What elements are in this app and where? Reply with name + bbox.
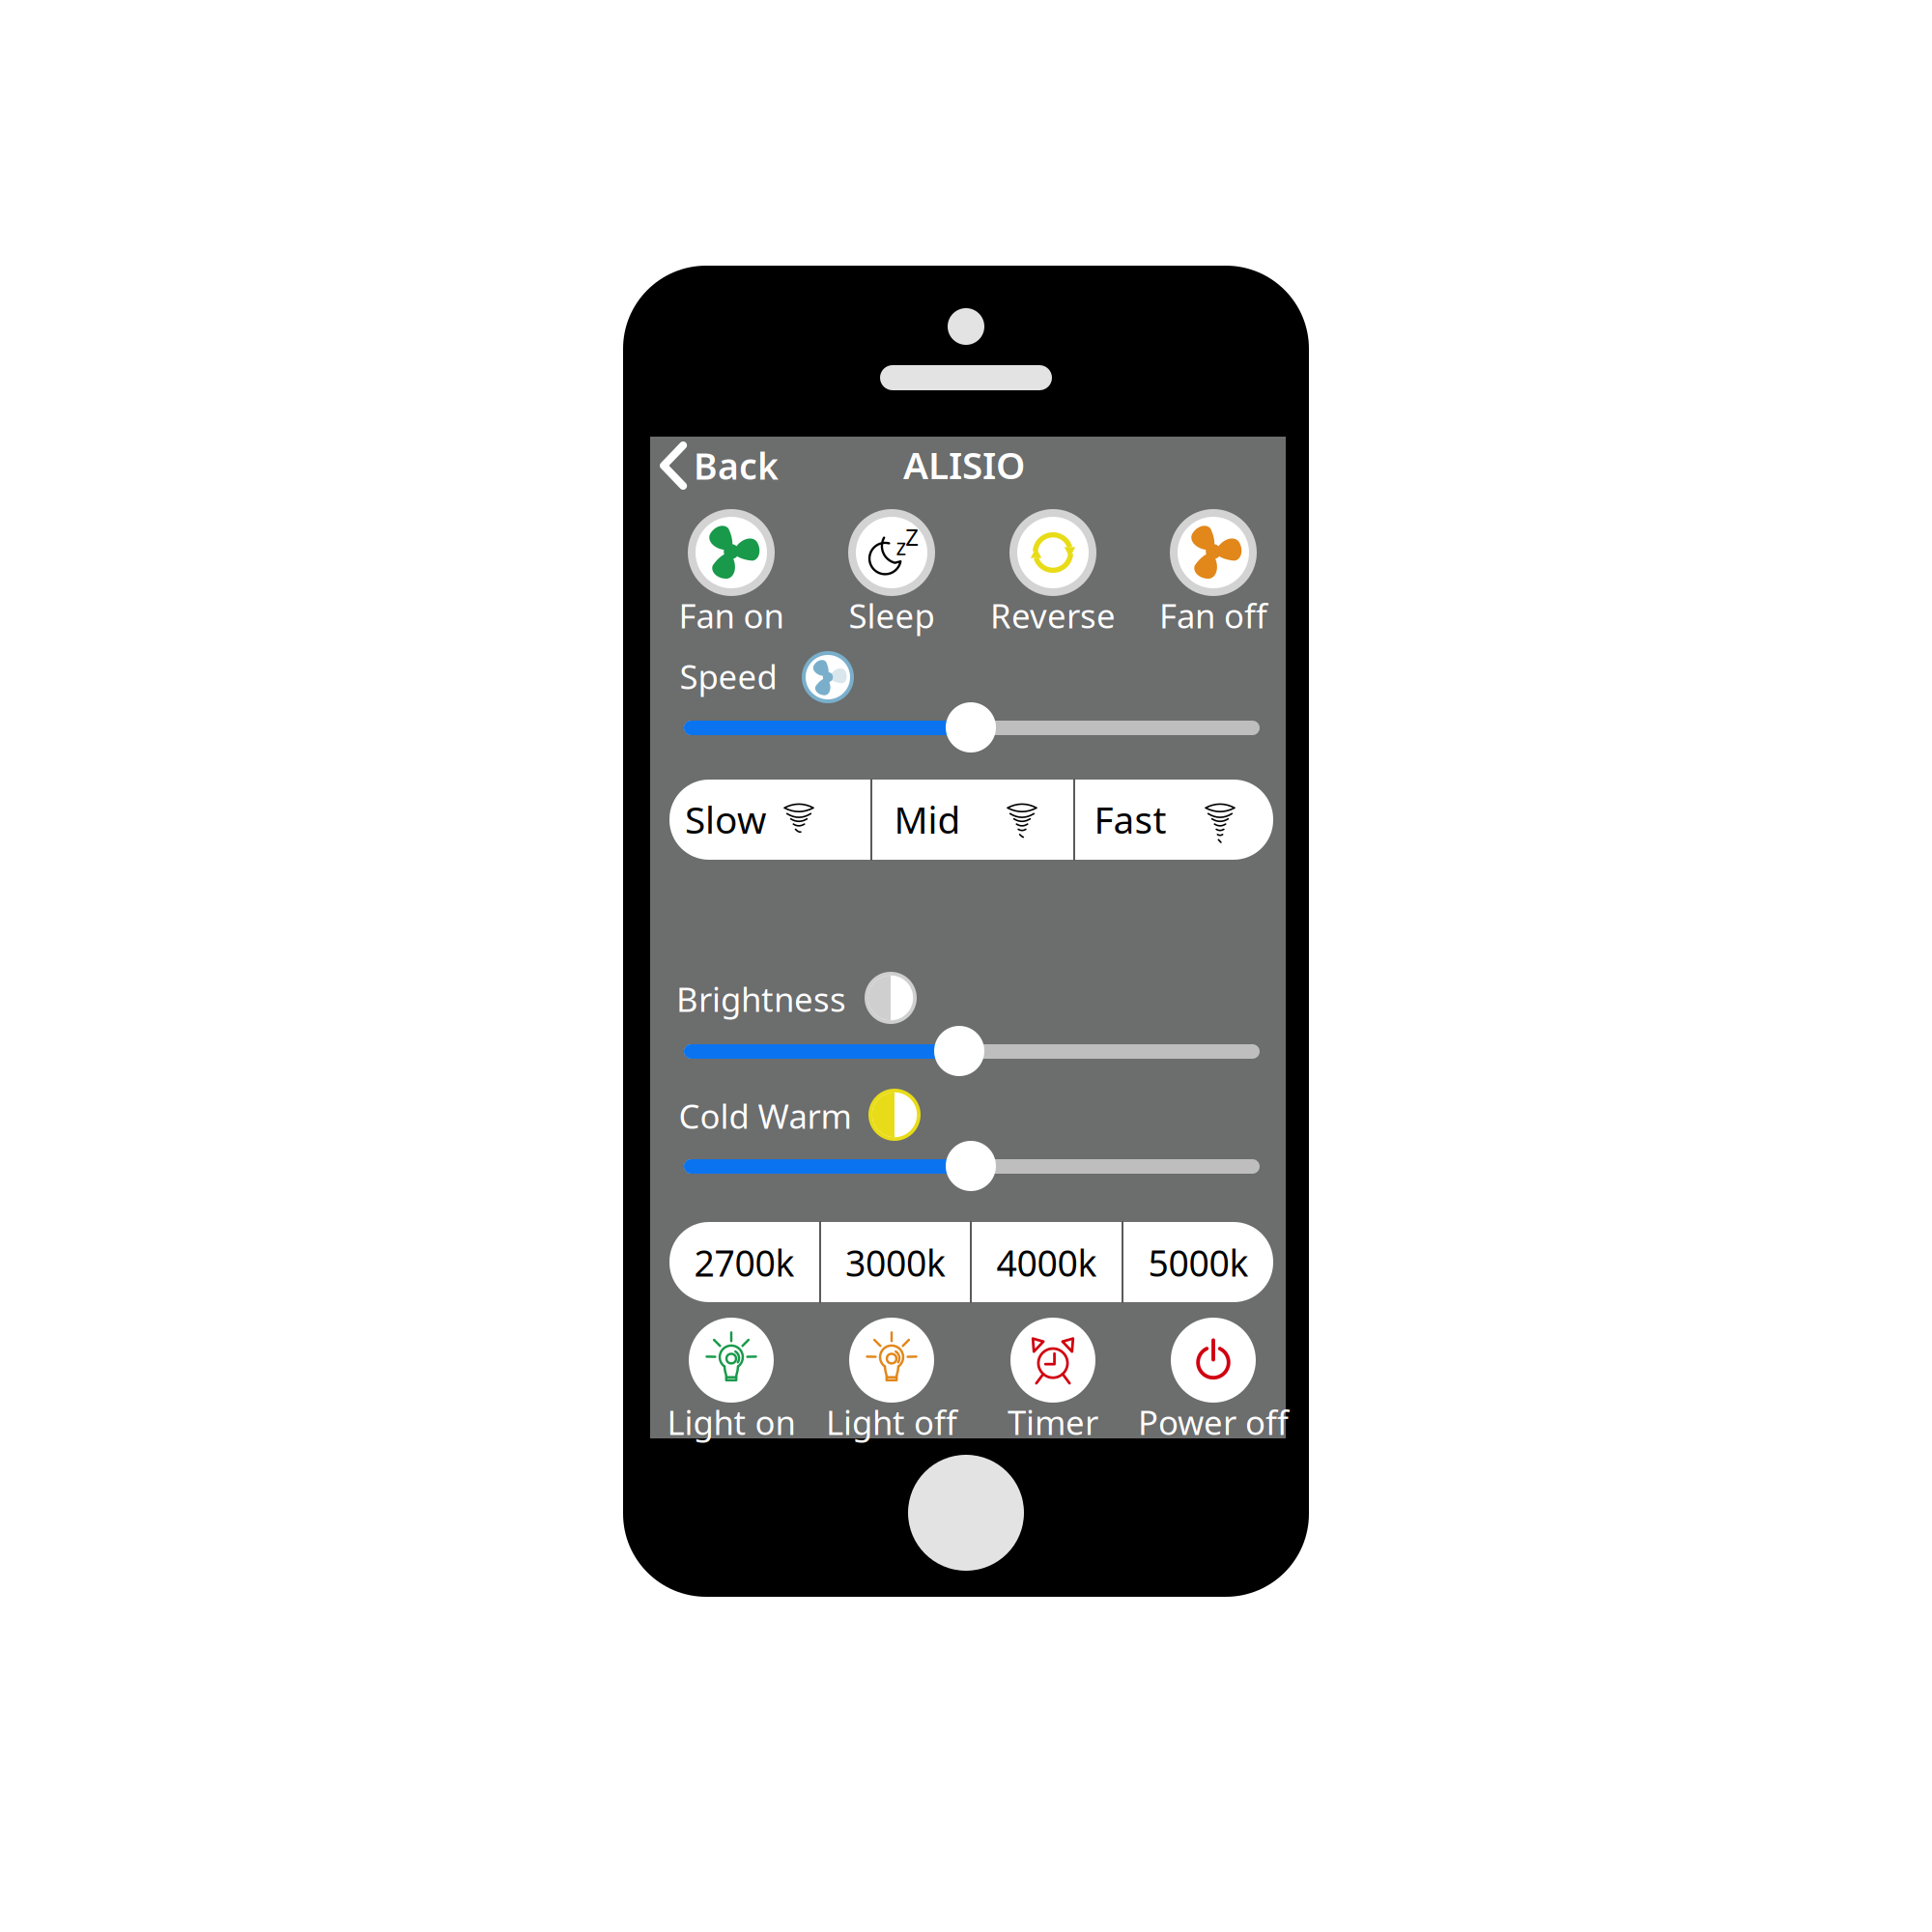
staticText: 5000k [1148, 1239, 1249, 1287]
staticText: Fast [1094, 794, 1166, 844]
staticText: 4000k [996, 1239, 1097, 1287]
staticText: Speed [680, 654, 777, 698]
staticText: Fan off [1159, 593, 1267, 638]
button[interactable]: Sleep [830, 503, 953, 623]
staticText: 3000k [845, 1239, 946, 1287]
button[interactable]: 2700k [669, 1222, 819, 1302]
button[interactable]: Timer [991, 1314, 1115, 1426]
staticText: Sleep [849, 593, 935, 638]
staticText: Mid [894, 794, 961, 844]
button[interactable]: Fan on [669, 503, 793, 623]
staticText: Light off [826, 1400, 957, 1444]
staticText: Cold Warm [679, 1094, 852, 1138]
button[interactable]: Mid [872, 780, 1073, 860]
button[interactable]: Back [655, 438, 786, 494]
staticText: Back [694, 442, 779, 490]
staticText: 2700k [694, 1239, 795, 1287]
button[interactable]: Fan off [1151, 503, 1275, 623]
staticText: ALISIO [903, 440, 1025, 489]
staticText: Timer [1008, 1400, 1098, 1444]
button[interactable]: 5000k [1123, 1222, 1273, 1302]
staticText: Light on [667, 1400, 796, 1444]
staticText: Fan on [679, 593, 784, 638]
button[interactable]: Reverse [991, 503, 1115, 623]
button[interactable]: Fast [1075, 780, 1273, 860]
button[interactable]: Slow [669, 780, 870, 860]
button[interactable]: 3000k [821, 1222, 970, 1302]
staticText: Reverse [990, 593, 1116, 638]
button[interactable]: 4000k [972, 1222, 1122, 1302]
button[interactable]: Light on [669, 1314, 793, 1426]
staticText: Power off [1138, 1400, 1289, 1444]
button[interactable]: Light off [830, 1314, 953, 1426]
button[interactable]: Power off [1151, 1314, 1275, 1426]
staticText: Slow [685, 794, 766, 844]
staticText: Brightness [676, 977, 846, 1021]
